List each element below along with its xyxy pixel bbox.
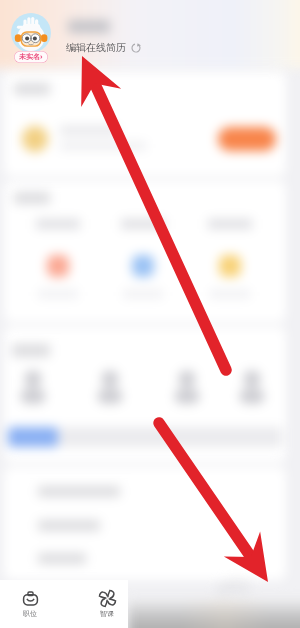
button[interactable]: [16, 369, 50, 403]
staticText: 职位: [23, 609, 37, 618]
button[interactable]: [93, 369, 127, 403]
button[interactable]: [218, 127, 276, 151]
button[interactable]: [107, 219, 179, 298]
button[interactable]: [22, 219, 94, 298]
staticText: 编辑在线简历: [66, 41, 126, 54]
button[interactable]: Profile avatar, not verified: [10, 13, 52, 67]
button[interactable]: [235, 369, 269, 403]
button[interactable]: Courses: [83, 580, 131, 628]
button[interactable]: Jobs: [6, 580, 54, 628]
staticText: 未实名›: [19, 52, 43, 62]
staticText: 智课: [100, 609, 114, 618]
button[interactable]: 编辑在线简历: [66, 41, 141, 54]
button[interactable]: [194, 219, 266, 298]
button[interactable]: [170, 369, 204, 403]
